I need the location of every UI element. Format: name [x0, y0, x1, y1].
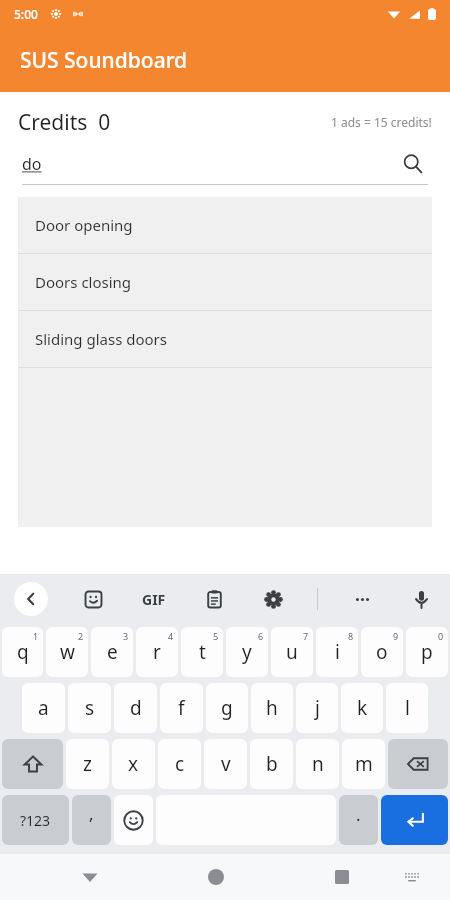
button[interactable]: l	[386, 683, 428, 733]
button[interactable]: Switch keyboard	[395, 860, 429, 894]
button[interactable]: s	[68, 683, 111, 733]
staticText: l	[405, 695, 410, 721]
button[interactable]: g	[206, 683, 248, 733]
button[interactable]: Home	[194, 855, 238, 899]
staticText: d	[130, 695, 142, 721]
button[interactable]: Back	[68, 855, 112, 899]
staticText: do	[22, 153, 42, 175]
button[interactable]: Doors closing	[18, 254, 432, 310]
button[interactable]: Clipboard	[199, 584, 229, 614]
staticText: 0	[438, 630, 444, 642]
button[interactable]: Voice input	[406, 584, 436, 614]
button[interactable]: Stickers	[78, 584, 108, 614]
button[interactable]: do	[22, 144, 428, 184]
button[interactable]: f	[160, 683, 203, 733]
staticText: t	[199, 639, 206, 665]
staticText: q	[17, 639, 29, 665]
button[interactable]: o	[361, 627, 403, 677]
staticText: o	[376, 639, 388, 665]
staticText: x	[128, 751, 139, 777]
button[interactable]: y	[226, 627, 268, 677]
button[interactable]: x	[112, 739, 155, 789]
staticText: k	[357, 695, 368, 721]
staticText: Door opening	[35, 215, 133, 235]
staticText: GIF	[142, 590, 166, 609]
staticText: 5:00	[14, 6, 38, 22]
button[interactable]: p	[406, 627, 448, 677]
staticText: b	[266, 751, 278, 777]
button[interactable]: GIF	[138, 586, 170, 613]
staticText: a	[38, 695, 49, 721]
button[interactable]: Backspace	[388, 739, 448, 789]
staticText: n	[312, 751, 324, 777]
button[interactable]: r	[136, 627, 178, 677]
button[interactable]: w	[46, 627, 88, 677]
button[interactable]: a	[22, 683, 65, 733]
button[interactable]: i	[316, 627, 358, 677]
button[interactable]: c	[158, 739, 201, 789]
staticText: 1	[33, 630, 39, 642]
button[interactable]: b	[250, 739, 293, 789]
staticText: 9	[393, 630, 399, 642]
button[interactable]: .	[339, 795, 378, 845]
staticText: m	[355, 751, 373, 777]
button[interactable]: u	[271, 627, 313, 677]
staticText: v	[221, 751, 231, 777]
staticText: 8	[348, 630, 354, 642]
staticText: p	[421, 639, 433, 665]
button[interactable]: z	[66, 739, 109, 789]
button[interactable]: More options	[347, 584, 377, 614]
button[interactable]: Search	[398, 149, 428, 179]
staticText: g	[221, 695, 233, 721]
button[interactable]: ,	[72, 795, 111, 845]
button[interactable]: Door opening	[18, 197, 432, 253]
staticText: c	[175, 751, 185, 777]
button[interactable]: Back	[14, 582, 48, 616]
button[interactable]: j	[296, 683, 338, 733]
button[interactable]: ?123	[2, 795, 69, 845]
button[interactable]: n	[296, 739, 339, 789]
staticText: f	[178, 695, 185, 721]
staticText: ,	[89, 802, 94, 825]
button[interactable]: h	[251, 683, 293, 733]
staticText: y	[242, 639, 252, 665]
staticText: w	[60, 639, 75, 665]
staticText: 4	[168, 630, 174, 642]
button[interactable]: Shift	[2, 739, 63, 789]
staticText: i	[335, 639, 340, 665]
staticText: s	[85, 695, 95, 721]
staticText: Credits 0	[18, 108, 111, 137]
button[interactable]: d	[114, 683, 157, 733]
staticText: Sliding glass doors	[35, 329, 168, 349]
button[interactable]: Recent apps	[320, 855, 364, 899]
button[interactable]: Enter	[381, 795, 448, 845]
staticText: .	[356, 803, 361, 826]
staticText: 1 ads = 15 credits!	[331, 114, 432, 130]
staticText: e	[107, 639, 118, 665]
button[interactable]: Sliding glass doors	[18, 311, 432, 367]
button[interactable]: m	[342, 739, 385, 789]
button[interactable]: Settings	[258, 584, 288, 614]
button[interactable]: t	[181, 627, 223, 677]
button[interactable]: v	[204, 739, 247, 789]
staticText: Doors closing	[35, 272, 132, 292]
staticText: 5	[213, 630, 219, 642]
staticText: 6	[258, 630, 264, 642]
staticText: u	[286, 639, 298, 665]
staticText: SUS Soundboard	[20, 46, 188, 75]
button[interactable]: k	[341, 683, 383, 733]
staticText: j	[315, 695, 320, 721]
staticText: h	[266, 695, 278, 721]
button[interactable]: e	[91, 627, 133, 677]
staticText: r	[153, 639, 161, 665]
staticText: 7	[303, 630, 309, 642]
staticText: z	[83, 751, 92, 777]
button[interactable]: Emoji	[114, 795, 153, 845]
staticText: 2	[78, 630, 84, 642]
staticText: 3	[123, 630, 129, 642]
button[interactable]: q	[2, 627, 43, 677]
staticText: ?123	[20, 811, 51, 830]
